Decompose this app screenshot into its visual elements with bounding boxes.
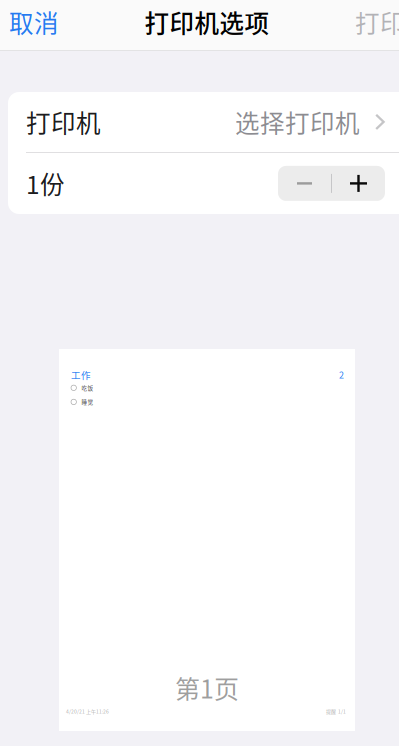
staticText: 4/20/21 上午11:26 [66,708,109,715]
staticText: 选择打印机 [235,104,360,140]
staticText: 打印机 [26,104,101,140]
button[interactable]: 取消 [0,0,70,44]
staticText: 第1页 [175,670,239,706]
button[interactable]: 打印 [344,0,399,44]
staticText: 工作 [71,368,91,382]
staticText: 2 [339,368,344,381]
staticText: 取消 [9,4,59,40]
button[interactable]: Decrease number of copies [278,166,331,201]
staticText: 打印机选项 [144,4,269,40]
button[interactable]: 打印机 [8,92,399,152]
staticText: 吃饭 [81,384,93,392]
staticText: 提醒 1/1 [326,708,346,715]
staticText: 1份 [26,166,65,201]
staticText: 睡觉 [81,398,93,406]
staticText: 打印 [355,4,399,40]
button[interactable]: Increase number of copies [332,166,385,201]
